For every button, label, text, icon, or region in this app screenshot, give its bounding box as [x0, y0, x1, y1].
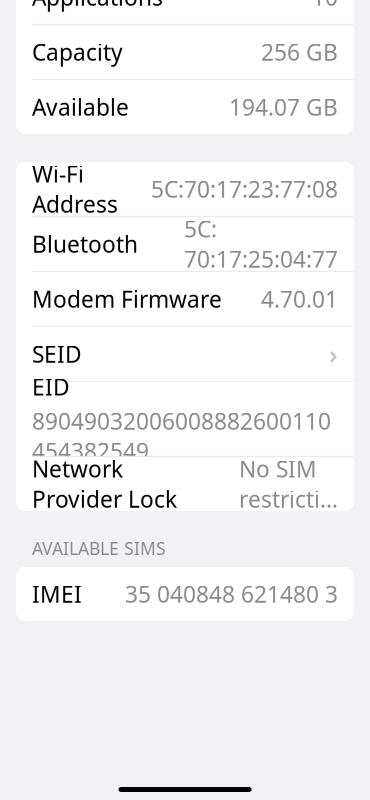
button[interactable]: Network Provider Lock — [16, 457, 354, 511]
staticText: Network Provider Lock — [32, 454, 177, 514]
button[interactable]: Modem Firmware — [16, 272, 354, 326]
staticText: 5C:70:17:25:04:77 — [184, 214, 338, 274]
staticText: IMEI — [32, 579, 82, 609]
staticText: AVAILABLE SIMS — [32, 537, 166, 560]
staticText: › — [329, 337, 338, 371]
staticText: Applications — [32, 0, 163, 12]
staticText: No SIM restricti… — [239, 454, 338, 514]
staticText: 256 GB — [261, 37, 338, 67]
staticText: Bluetooth — [32, 229, 138, 259]
staticText: EID — [32, 372, 70, 402]
button[interactable]: Available — [16, 80, 354, 134]
button[interactable]: IMEI — [16, 567, 354, 621]
staticText: SEID — [32, 339, 82, 369]
button[interactable]: SEID — [16, 327, 354, 381]
button[interactable]: Wi-Fi Address — [16, 162, 354, 216]
button[interactable]: Applications — [16, 0, 354, 24]
staticText: 35 040848 621480 3 — [125, 579, 338, 609]
button[interactable]: Bluetooth — [16, 217, 354, 271]
button[interactable]: Capacity — [16, 25, 354, 79]
staticText: 10 — [312, 0, 338, 12]
staticText: Wi-Fi Address — [32, 159, 118, 219]
staticText: 5C:70:17:23:77:08 — [151, 174, 338, 204]
staticText: Available — [32, 92, 129, 122]
staticText: 4.70.01 — [261, 284, 338, 314]
staticText: Capacity — [32, 37, 123, 67]
staticText: 89049032006008882600110454382549 — [32, 406, 331, 466]
button[interactable]: EID — [16, 382, 354, 456]
staticText: 194.07 GB — [229, 92, 338, 122]
staticText: Modem Firmware — [32, 284, 222, 314]
